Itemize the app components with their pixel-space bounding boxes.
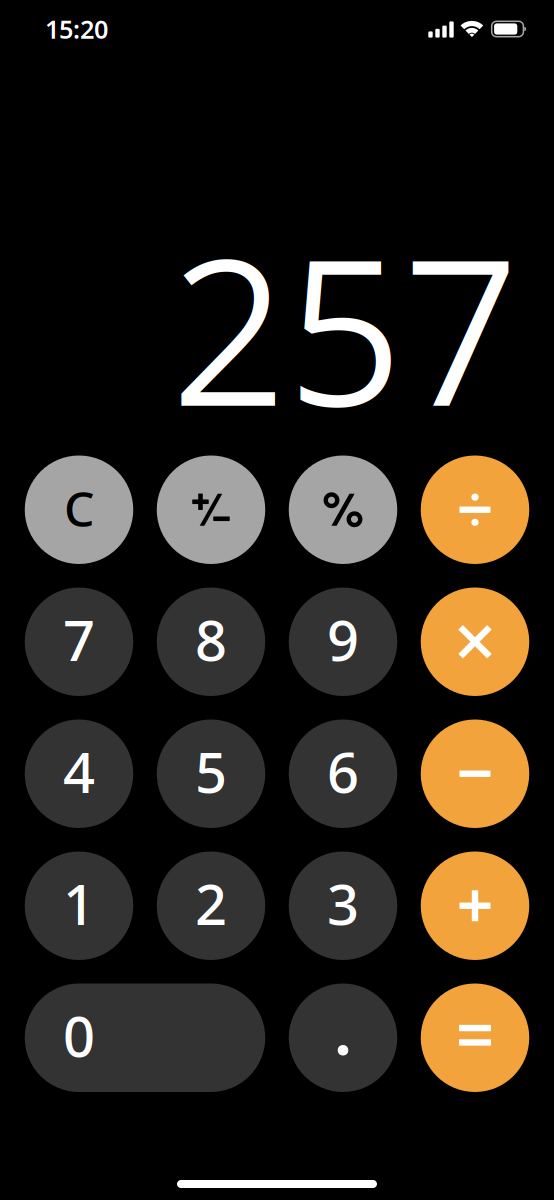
button[interactable]: Multiply	[421, 587, 529, 696]
staticText: 7	[63, 602, 95, 676]
button[interactable]: Decimal point	[289, 983, 397, 1092]
button[interactable]: Plus minus	[157, 455, 265, 564]
button[interactable]: Divide	[421, 455, 529, 564]
staticText: C	[64, 476, 94, 540]
button[interactable]: 1	[25, 851, 133, 960]
staticText: 2	[195, 866, 227, 940]
staticText: 1	[63, 866, 95, 940]
staticText: 3	[327, 866, 359, 940]
button[interactable]: Equals	[421, 983, 529, 1092]
staticText: 8	[195, 602, 227, 676]
button[interactable]: Plus	[421, 851, 529, 960]
staticText: 0	[63, 998, 95, 1072]
staticText: 9	[327, 602, 359, 676]
button[interactable]: 8	[157, 587, 265, 696]
button[interactable]: Minus	[421, 719, 529, 828]
button[interactable]: Clear	[25, 455, 133, 564]
button[interactable]: 2	[157, 851, 265, 960]
button[interactable]: 3	[289, 851, 397, 960]
button[interactable]: 0	[25, 983, 265, 1092]
button[interactable]: 7	[25, 587, 133, 696]
staticText: 15:20	[45, 12, 108, 46]
staticText: 6	[327, 734, 359, 808]
button[interactable]: 5	[157, 719, 265, 828]
staticText: 257	[171, 189, 519, 465]
button[interactable]: 4	[25, 719, 133, 828]
staticText: 4	[63, 734, 95, 808]
button[interactable]: Percent	[289, 455, 397, 564]
button[interactable]: 9	[289, 587, 397, 696]
button[interactable]: 6	[289, 719, 397, 828]
staticText: 5	[195, 734, 227, 808]
